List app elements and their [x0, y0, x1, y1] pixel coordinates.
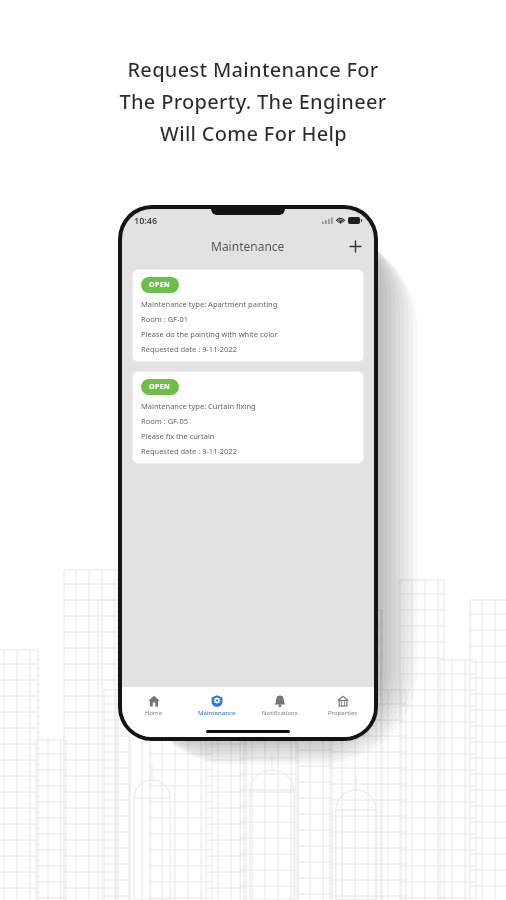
- staticText: Notifications: [262, 709, 298, 717]
- staticText: OPEN: [149, 280, 171, 290]
- staticText: Please do the painting with white color: [141, 329, 278, 339]
- button[interactable]: OPEN: [132, 269, 364, 362]
- staticText: Home: [145, 709, 163, 717]
- button[interactable]: Add maintenance request: [342, 233, 368, 259]
- staticText: OPEN: [149, 382, 171, 392]
- staticText: Please fix the curtain: [141, 431, 215, 441]
- staticText: Maintenance: [198, 709, 236, 717]
- staticText: Requested date : 9-11-2022: [141, 446, 237, 456]
- staticText: Maintenance: [211, 238, 285, 254]
- staticText: Room : GF-05: [141, 416, 189, 426]
- button[interactable]: Notifications: [248, 692, 311, 720]
- staticText: Request Maintenance For: [127, 56, 379, 83]
- staticText: 10:46: [134, 214, 158, 226]
- staticText: Properties: [328, 709, 358, 717]
- staticText: Room : GF-01: [141, 314, 189, 324]
- staticText: Will Come For Help: [160, 120, 347, 147]
- button[interactable]: Home: [122, 692, 185, 720]
- button[interactable]: Properties: [311, 692, 374, 720]
- staticText: Maintenance type: Curtain fixing: [141, 401, 256, 411]
- staticText: The Property. The Engineer: [119, 88, 387, 115]
- staticText: Requested date : 9-11-2022: [141, 344, 237, 354]
- button[interactable]: OPEN: [132, 371, 364, 464]
- button[interactable]: Maintenance: [185, 692, 248, 720]
- staticText: Maintenance type: Apartment painting: [141, 299, 278, 309]
